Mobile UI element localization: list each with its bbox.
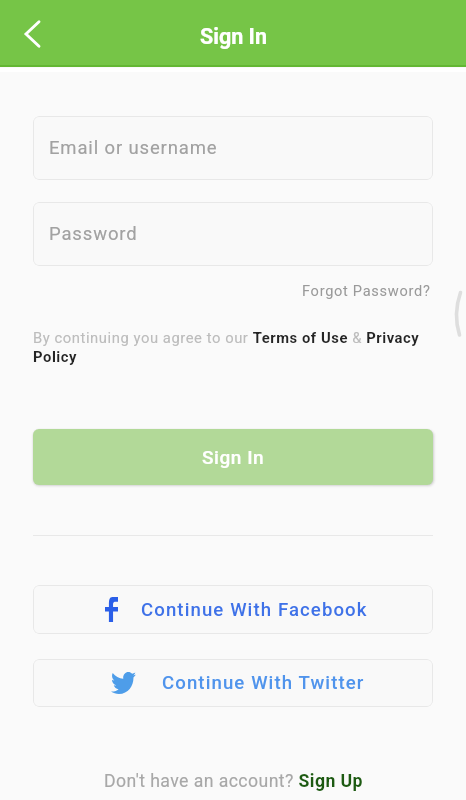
button[interactable]: Sign In — [33, 429, 433, 485]
staticText: Email or username — [49, 137, 218, 159]
staticText: Sign In — [200, 24, 267, 49]
staticText: Sign In — [202, 446, 265, 468]
button[interactable]: Continue With Twitter — [33, 659, 433, 707]
staticText: Continue With Twitter — [162, 672, 365, 694]
button[interactable]: Continue With Facebook — [33, 585, 433, 634]
staticText: Continue With Facebook — [141, 599, 368, 621]
button[interactable]: Don't have an account? Sign Up — [104, 771, 363, 792]
button[interactable]: Email or username — [33, 116, 433, 180]
staticText: Password — [49, 223, 138, 245]
button[interactable]: Forgot Password? — [300, 280, 433, 301]
staticText: By continuing you agree to our Terms of … — [33, 329, 433, 366]
button[interactable]: Password — [33, 202, 433, 266]
button[interactable]: Back — [10, 12, 54, 56]
